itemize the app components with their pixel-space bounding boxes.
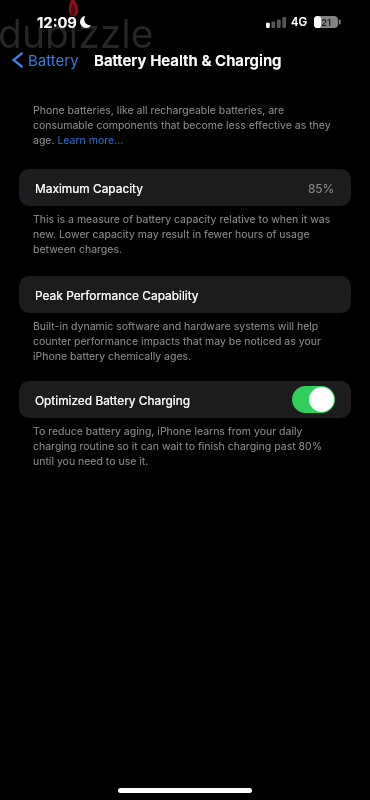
staticText: Battery	[28, 51, 79, 69]
staticText: 85%	[308, 181, 335, 195]
button[interactable]: Optimized Battery Charging	[292, 386, 335, 413]
staticText: dubizzle	[0, 10, 154, 57]
button[interactable]: Learn more about battery health	[55, 136, 123, 150]
staticText: This is a measure of battery capacity re…	[33, 213, 338, 256]
staticText: Battery Health & Charging	[94, 51, 282, 69]
staticText: Phone batteries, like all rechargeable b…	[33, 104, 338, 147]
staticText: 4G	[291, 15, 308, 29]
staticText: 12:09	[37, 13, 77, 31]
button[interactable]: Optimized Battery Charging	[19, 381, 351, 418]
button[interactable]: Back to Battery	[0, 47, 87, 73]
staticText: Built-in dynamic software and hardware s…	[33, 320, 338, 363]
staticText: Peak Performance Capability	[35, 288, 199, 302]
staticText: To reduce battery aging, iPhone learns f…	[33, 425, 338, 468]
button[interactable]: Maximum Capacity	[19, 169, 351, 206]
staticText: 21	[321, 17, 332, 28]
button[interactable]: Peak Performance Capability	[19, 276, 351, 313]
staticText: Maximum Capacity	[35, 181, 143, 195]
staticText: Optimized Battery Charging	[35, 393, 191, 407]
